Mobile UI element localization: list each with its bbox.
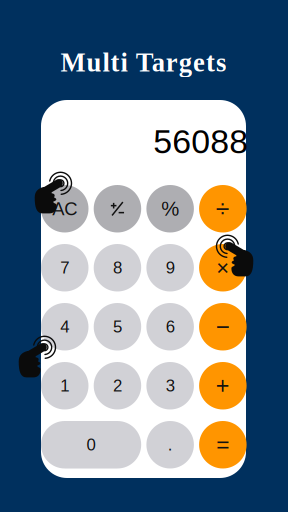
staticText: 8: [113, 258, 122, 277]
button[interactable]: Decimal point: [146, 421, 194, 468]
button[interactable]: 5: [94, 303, 141, 350]
button[interactable]: Multiply: [199, 244, 247, 291]
button[interactable]: 3: [146, 362, 194, 409]
staticText: AC: [52, 198, 77, 219]
staticText: 5: [113, 317, 122, 336]
button[interactable]: Minus: [199, 303, 247, 350]
button[interactable]: 9: [146, 244, 194, 291]
button[interactable]: Plus: [199, 362, 247, 409]
staticText: 4: [60, 317, 69, 336]
button[interactable]: 1: [41, 362, 88, 409]
button[interactable]: 8: [94, 244, 141, 291]
button[interactable]: 6: [146, 303, 194, 350]
staticText: %: [161, 197, 179, 220]
staticText: 7: [60, 258, 69, 277]
staticText: 2: [113, 376, 122, 395]
button[interactable]: Divide: [199, 185, 247, 232]
staticText: 1: [60, 376, 69, 395]
staticText: =: [216, 432, 229, 457]
staticText: 56088: [153, 123, 248, 160]
button[interactable]: 7: [41, 244, 88, 291]
staticText: ÷: [216, 195, 230, 223]
button[interactable]: 4: [41, 303, 88, 350]
staticText: 0: [87, 435, 96, 454]
staticText: .: [168, 435, 173, 454]
button[interactable]: 2: [94, 362, 141, 409]
staticText: +: [216, 373, 230, 399]
staticText: 6: [166, 317, 175, 336]
staticText: 9: [166, 258, 175, 277]
button[interactable]: Plus minus: [94, 185, 141, 232]
button[interactable]: All clear: [41, 185, 88, 232]
button[interactable]: Percent: [146, 185, 194, 232]
button[interactable]: 0: [41, 421, 141, 468]
staticText: 3: [166, 376, 175, 395]
button[interactable]: Equals: [199, 421, 247, 468]
staticText: ×: [216, 255, 229, 280]
staticText: Multi Targets: [60, 48, 226, 77]
staticText: −: [216, 313, 230, 340]
